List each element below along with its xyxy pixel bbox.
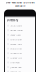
staticText: Granite Co — [10, 52, 21, 55]
button[interactable]: Bright Forge — [5, 28, 35, 33]
staticText: Harbor Ltd — [10, 56, 21, 59]
staticText: Kestrel Co — [10, 70, 20, 72]
button[interactable]: Ember Yard — [5, 42, 35, 46]
button[interactable]: Harbor Ltd — [5, 56, 35, 60]
staticText: Cedar Lane — [10, 33, 20, 36]
staticText: Field Nine — [10, 47, 21, 50]
staticText: Iron Peak — [10, 61, 19, 64]
button[interactable]: Juniper Bay — [5, 65, 35, 69]
staticText: Delta Craft — [10, 38, 22, 41]
staticText: available — [15, 4, 25, 7]
staticText: Atlas Works — [10, 24, 22, 27]
staticText: Juniper Bay — [10, 66, 21, 68]
button[interactable]: Delta Craft — [5, 37, 35, 42]
button[interactable]: Kestrel Co — [5, 69, 35, 72]
staticText: Over 4000 scrap builders — [5, 1, 34, 4]
button[interactable]: Field Nine — [5, 46, 35, 51]
button[interactable]: Granite Co — [5, 51, 35, 56]
button[interactable]: Iron Peak — [5, 60, 35, 65]
staticText: Directory — [7, 18, 18, 22]
button[interactable]: Cedar Lane — [5, 33, 35, 37]
staticText: Ember Yard — [10, 43, 21, 45]
staticText: Bright Forge — [10, 29, 22, 32]
button[interactable]: Atlas Works — [5, 23, 35, 28]
